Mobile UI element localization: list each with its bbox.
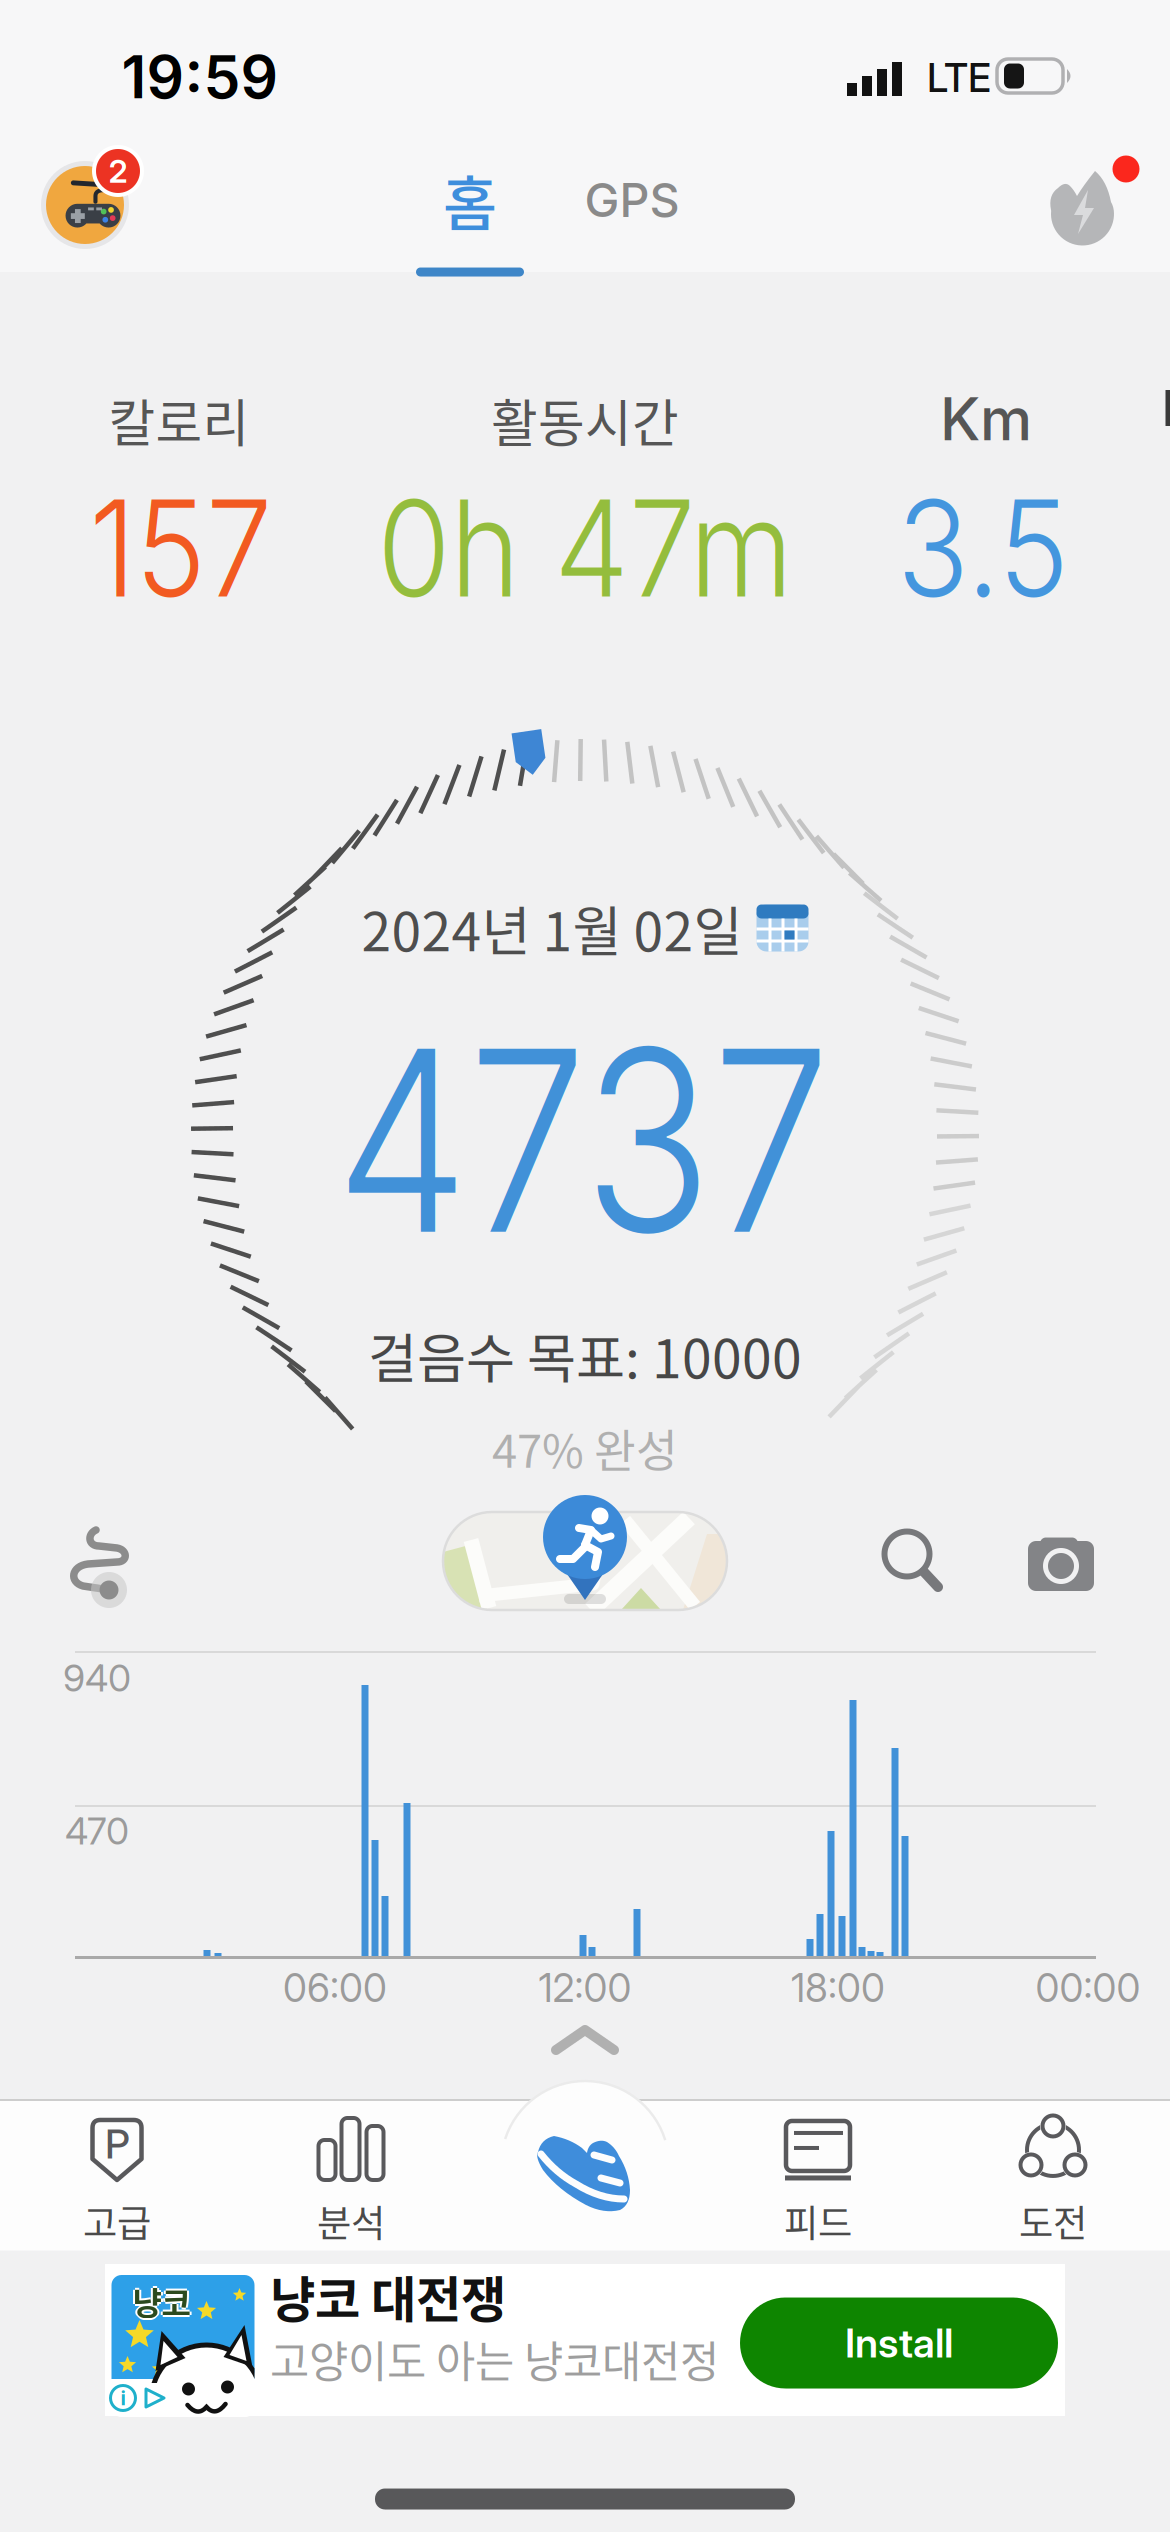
button[interactable]: Steps bbox=[530, 2120, 640, 2220]
button[interactable]: Route bbox=[70, 1526, 146, 1606]
staticText: 18:00 bbox=[791, 1965, 885, 2011]
staticText: P bbox=[105, 2120, 130, 2168]
staticText: 냥코 bbox=[134, 2278, 192, 2324]
staticText: LTE bbox=[927, 55, 991, 101]
staticText: 12:00 bbox=[538, 1965, 631, 2011]
button[interactable]: 피드 bbox=[743, 2118, 893, 2248]
staticText: 냥코 bbox=[132, 2276, 190, 2322]
staticText: Install bbox=[845, 2319, 953, 2367]
staticText: 냥코 bbox=[132, 2280, 190, 2326]
staticText: 06:00 bbox=[283, 1965, 387, 2011]
staticText: 피드 bbox=[784, 2194, 852, 2248]
button[interactable]: Install bbox=[740, 2297, 1058, 2388]
staticText: i bbox=[120, 2386, 125, 2410]
button[interactable]: Collapse chart bbox=[550, 2023, 620, 2057]
staticText: 0h 47m bbox=[351, 467, 818, 629]
staticText: Km bbox=[940, 383, 1032, 454]
staticText: 470 bbox=[65, 1808, 129, 1854]
staticText: 47% 완성 bbox=[492, 1415, 678, 1481]
button[interactable]: Camera bbox=[1028, 1535, 1094, 1593]
staticText: 걸음수 목표: 10000 bbox=[368, 1316, 802, 1394]
staticText: 고급 bbox=[83, 2194, 151, 2248]
staticText: 940 bbox=[63, 1655, 131, 1701]
button[interactable]: 도전 bbox=[978, 2118, 1128, 2248]
button[interactable]: Map bbox=[443, 1491, 727, 1631]
staticText: 홈 bbox=[443, 157, 497, 242]
staticText: 3.5 bbox=[886, 467, 1079, 629]
staticText: 활동시간 bbox=[491, 383, 679, 457]
staticText: 냥코 bbox=[132, 2278, 190, 2324]
staticText: 냥코 bbox=[130, 2278, 188, 2324]
staticText: 냥코 대전쟁 bbox=[270, 2260, 506, 2332]
staticText: 분석 bbox=[317, 2194, 385, 2248]
staticText: 2 bbox=[108, 152, 127, 190]
staticText: 2024년 1월 02일 bbox=[361, 889, 742, 967]
button[interactable]: Streak bbox=[1037, 162, 1127, 252]
staticText: 19:59 bbox=[121, 41, 278, 112]
staticText: GPS bbox=[584, 172, 679, 228]
staticText: 4737 bbox=[288, 987, 877, 1292]
staticText: 도전 bbox=[1019, 2194, 1087, 2248]
button[interactable]: Search bbox=[877, 1526, 947, 1598]
button[interactable]: Games bbox=[41, 161, 145, 249]
button[interactable]: GPS bbox=[562, 160, 702, 240]
button[interactable]: 2024년 1월 02일 bbox=[361, 888, 808, 968]
button[interactable]: 홈 bbox=[420, 160, 520, 240]
button[interactable]: P bbox=[42, 2118, 192, 2248]
staticText: 고양이도 아는 냥코대전정 bbox=[270, 2328, 719, 2390]
staticText: 157 bbox=[78, 467, 284, 629]
staticText: 칼로리 bbox=[108, 383, 249, 457]
staticText: 00:00 bbox=[1035, 1965, 1140, 2011]
button[interactable]: 분석 bbox=[276, 2118, 426, 2248]
